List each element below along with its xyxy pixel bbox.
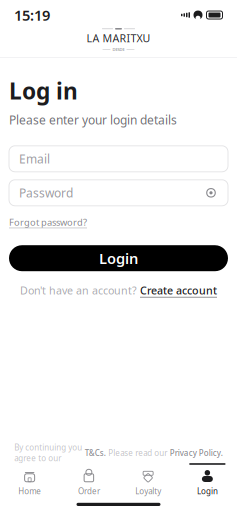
button[interactable]: Loyalty <box>118 462 178 498</box>
button[interactable]: T&Cs. <box>85 447 106 458</box>
staticText: DESDE <box>112 47 124 52</box>
staticText: Forgot password? <box>9 216 87 228</box>
button[interactable]: Show password <box>204 186 218 200</box>
staticText: Email <box>19 151 50 167</box>
staticText: 15:19 <box>14 5 50 25</box>
staticText: Log in <box>9 76 78 106</box>
button[interactable]: Privacy Policy. <box>170 447 223 458</box>
staticText: Login <box>197 486 218 496</box>
button[interactable]: Order <box>59 462 118 498</box>
staticText: LA MARITXU <box>86 31 150 45</box>
staticText: By continuing you agree to our <box>14 442 82 463</box>
staticText: Don't have an account? <box>20 283 137 297</box>
staticText: Home <box>18 486 41 496</box>
button[interactable]: Forgot password? <box>9 213 87 231</box>
staticText: T&Cs. <box>85 447 106 458</box>
staticText: Privacy Policy. <box>170 447 223 458</box>
staticText: Please read our <box>108 447 167 458</box>
button[interactable]: Login <box>9 245 228 271</box>
staticText: Password <box>19 185 73 201</box>
staticText: Please enter your login details <box>9 112 177 128</box>
staticText: Login <box>99 248 138 268</box>
button[interactable]: Login <box>178 462 237 498</box>
button[interactable]: Home <box>0 462 59 498</box>
button[interactable]: Create account <box>140 281 217 299</box>
staticText: Order <box>78 486 100 496</box>
staticText: Loyalty <box>135 486 161 496</box>
staticText: Create account <box>140 283 217 297</box>
